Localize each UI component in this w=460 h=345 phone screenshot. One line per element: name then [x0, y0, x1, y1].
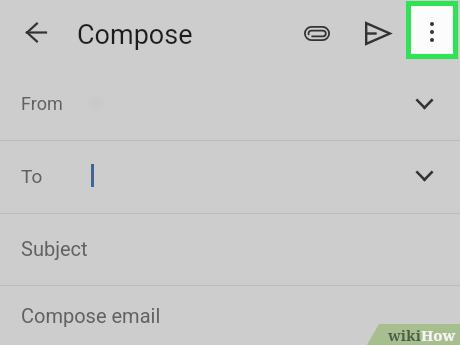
- button[interactable]: To: [0, 141, 460, 213]
- button[interactable]: From: [0, 62, 460, 140]
- button[interactable]: Expand From: [408, 90, 440, 116]
- button[interactable]: Send: [356, 11, 400, 55]
- button[interactable]: More options: [411, 6, 453, 54]
- staticText: Compose: [77, 19, 193, 51]
- staticText: How: [421, 325, 456, 345]
- button[interactable]: Subject: [0, 214, 460, 285]
- staticText: Subject: [21, 237, 88, 260]
- button[interactable]: Compose email: [0, 286, 460, 345]
- staticText: wiki: [388, 325, 421, 345]
- staticText: To: [21, 165, 43, 187]
- staticText: Compose email: [21, 304, 161, 327]
- button[interactable]: Attach file: [295, 11, 339, 55]
- staticText: From: [21, 93, 63, 114]
- button[interactable]: Back: [14, 10, 58, 54]
- button[interactable]: Expand To: [408, 162, 440, 188]
